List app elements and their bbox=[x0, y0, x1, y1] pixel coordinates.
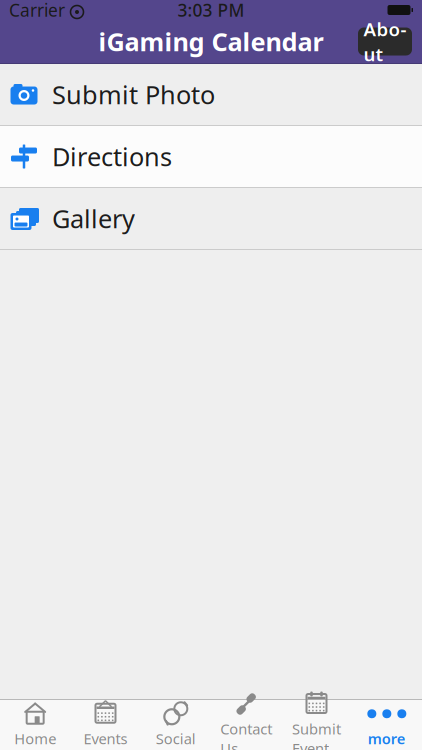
button[interactable]: Gallery bbox=[0, 188, 422, 250]
staticText: Carrier bbox=[9, 0, 65, 21]
staticText: Social bbox=[156, 729, 196, 748]
staticText: Submit Event bbox=[292, 719, 341, 750]
button[interactable]: more bbox=[352, 700, 422, 750]
button[interactable]: Directions bbox=[0, 126, 422, 188]
staticText: 3:03 PM bbox=[177, 0, 244, 21]
button[interactable]: Events bbox=[70, 700, 141, 750]
button[interactable]: Contact Us bbox=[211, 700, 281, 750]
button[interactable]: Submit Event bbox=[281, 700, 352, 750]
staticText: Home bbox=[14, 729, 56, 748]
staticText: Events bbox=[83, 729, 127, 748]
button[interactable]: Social bbox=[141, 700, 211, 750]
staticText: Directions bbox=[52, 140, 172, 173]
button[interactable]: About bbox=[358, 27, 412, 55]
staticText: About bbox=[363, 17, 406, 66]
staticText: Gallery bbox=[52, 202, 135, 235]
staticText: Submit Photo bbox=[52, 78, 215, 111]
button[interactable]: Submit Photo bbox=[0, 64, 422, 126]
staticText: Contact Us bbox=[220, 719, 272, 750]
staticText: iGaming Calendar bbox=[98, 25, 323, 58]
button[interactable]: Home bbox=[0, 700, 70, 750]
staticText: more bbox=[368, 729, 406, 748]
